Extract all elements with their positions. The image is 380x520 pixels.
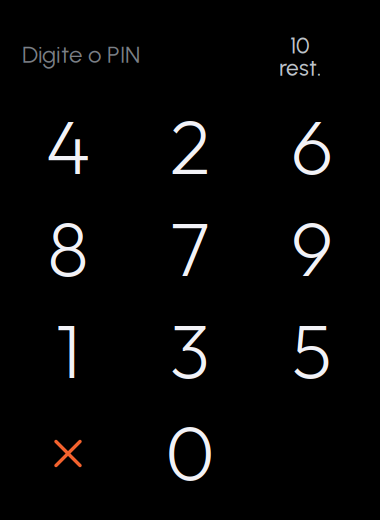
staticText: 0 xyxy=(165,404,215,500)
staticText: 7 xyxy=(170,200,210,296)
button[interactable]: 1 xyxy=(7,299,129,401)
staticText: 3 xyxy=(169,302,210,398)
button[interactable]: 4 xyxy=(7,95,129,197)
staticText: 10 xyxy=(290,32,310,59)
button[interactable]: 8 xyxy=(7,197,129,299)
staticText: 4 xyxy=(45,98,90,194)
staticText: 6 xyxy=(290,98,333,194)
button[interactable]: 2 xyxy=(129,95,251,197)
button[interactable]: 6 xyxy=(251,95,373,197)
staticText: 2 xyxy=(169,98,210,194)
button[interactable]: 7 xyxy=(129,197,251,299)
button[interactable]: Delete xyxy=(7,401,129,503)
staticText: 9 xyxy=(290,200,333,296)
button[interactable]: 5 xyxy=(251,299,373,401)
staticText: 1 xyxy=(55,302,80,398)
button[interactable]: 0 xyxy=(129,401,251,503)
button[interactable]: 3 xyxy=(129,299,251,401)
button[interactable]: 9 xyxy=(251,197,373,299)
staticText: rest. xyxy=(279,54,321,81)
staticText: 8 xyxy=(47,200,89,296)
staticText: 5 xyxy=(291,302,332,398)
staticText: Digite o PIN xyxy=(22,40,140,69)
